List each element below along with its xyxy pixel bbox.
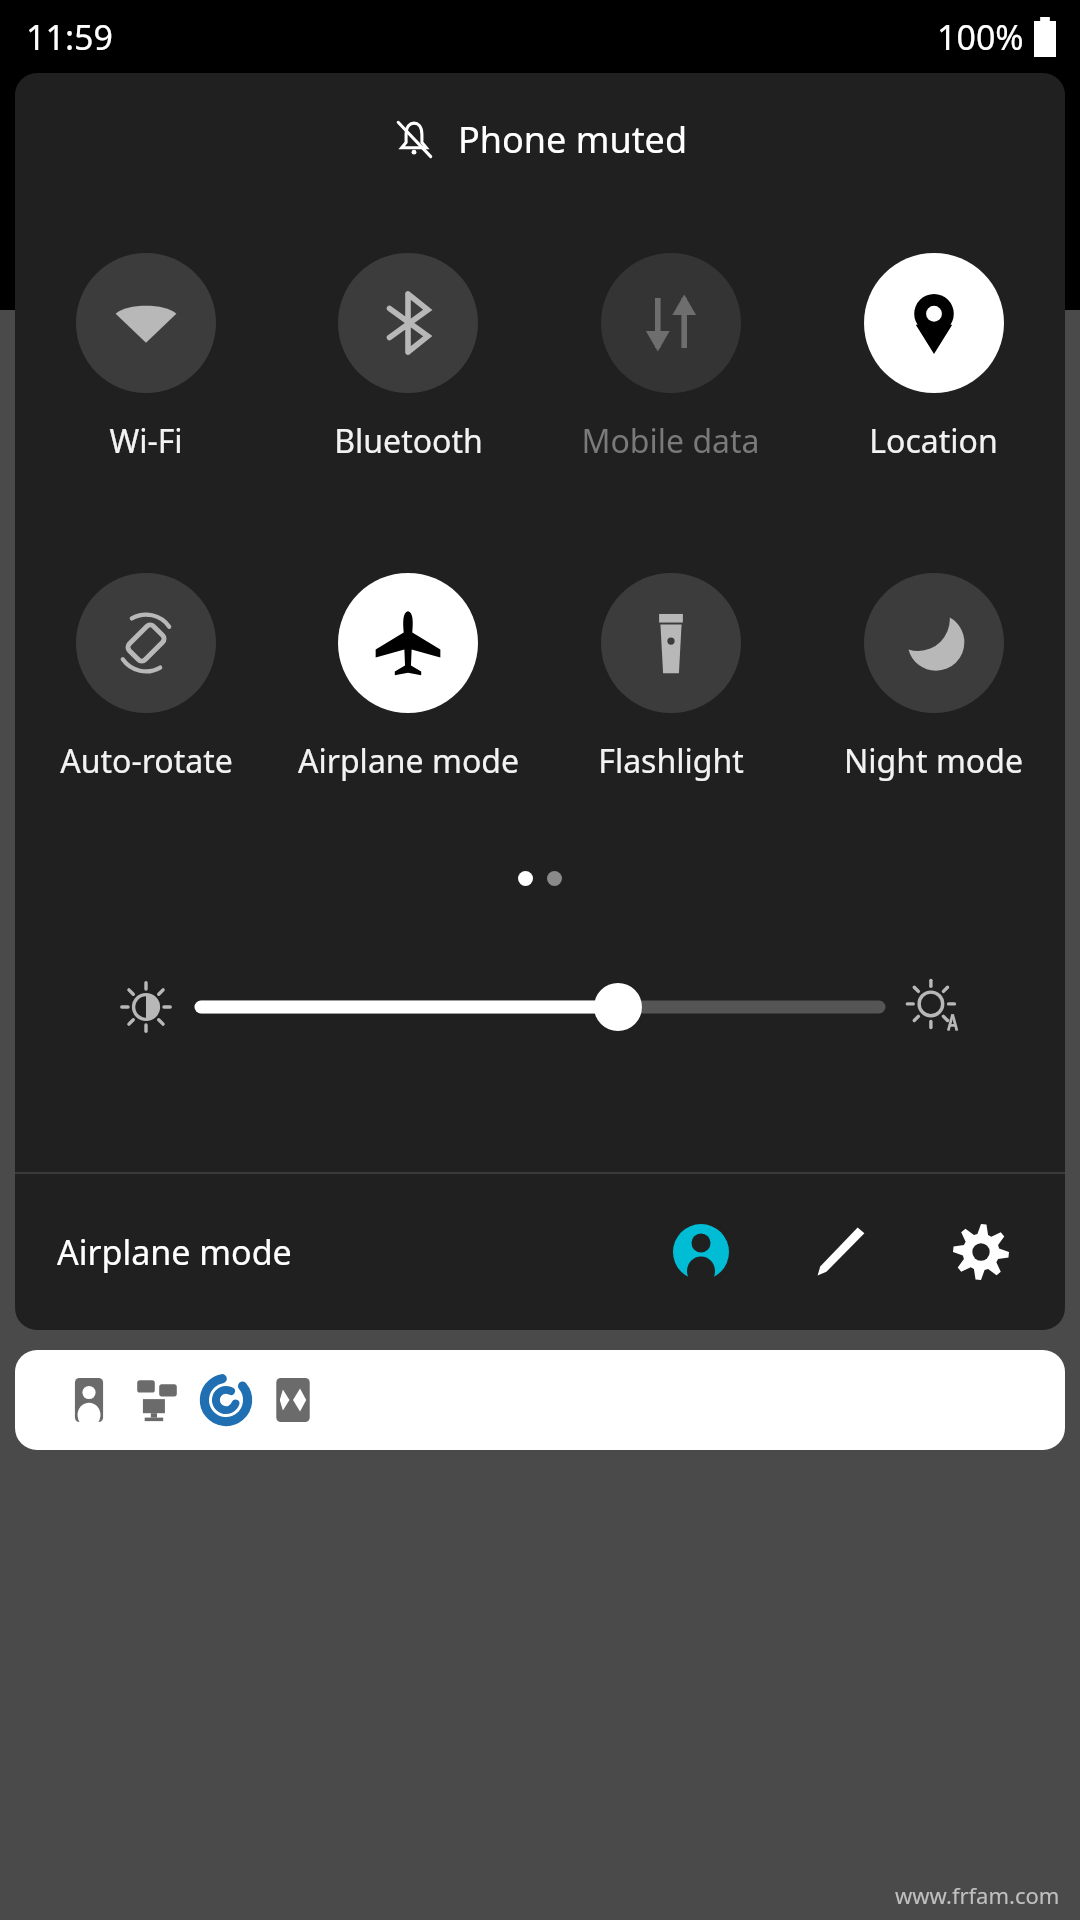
staticText: Phone muted xyxy=(458,115,688,164)
button[interactable]: Mobile data xyxy=(539,253,802,463)
button[interactable]: Location xyxy=(802,253,1065,463)
staticText: Mobile data xyxy=(581,419,760,463)
button[interactable]: Bluetooth xyxy=(277,253,539,463)
staticText: www.frfam.com xyxy=(895,1880,1060,1910)
button[interactable]: Settings xyxy=(939,1210,1023,1294)
button[interactable]: Night mode xyxy=(802,573,1065,783)
staticText: 100% xyxy=(937,14,1024,60)
staticText: Location xyxy=(869,419,998,463)
staticText: 11:59 xyxy=(26,14,113,60)
button[interactable] xyxy=(15,1350,1065,1450)
button[interactable]: User xyxy=(659,1210,743,1294)
staticText: Night mode xyxy=(844,739,1023,783)
staticText: Auto-rotate xyxy=(60,739,233,783)
staticText: Bluetooth xyxy=(334,419,483,463)
button[interactable]: Wi-Fi xyxy=(15,253,277,463)
staticText: Wi-Fi xyxy=(109,419,183,463)
staticText: Airplane mode xyxy=(298,739,519,783)
button[interactable]: Airplane mode xyxy=(57,1229,292,1275)
staticText: Flashlight xyxy=(598,739,744,783)
button[interactable]: Auto-rotate xyxy=(15,573,277,783)
button[interactable]: Flashlight xyxy=(539,573,802,783)
button[interactable]: Airplane mode xyxy=(277,573,539,783)
button[interactable] xyxy=(201,977,879,1037)
button[interactable]: Edit xyxy=(799,1210,883,1294)
